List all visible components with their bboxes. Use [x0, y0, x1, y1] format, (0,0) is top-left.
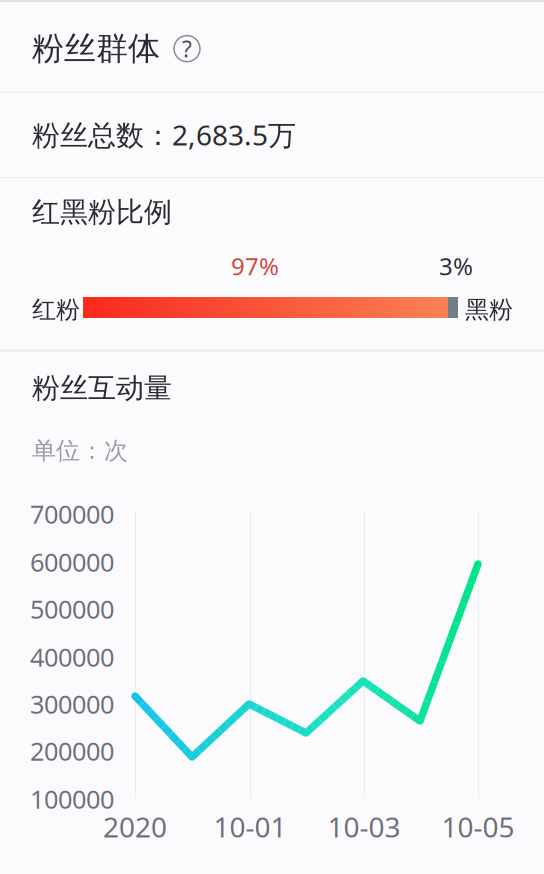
staticText: 300000 [30, 687, 114, 721]
staticText: 红粉 [32, 295, 80, 324]
staticText: 单位：次 [32, 436, 128, 465]
staticText: 700000 [30, 497, 114, 531]
staticText: 600000 [30, 545, 114, 579]
staticText: 红黑粉比例 [32, 195, 172, 229]
staticText: 200000 [30, 734, 114, 768]
staticText: 400000 [30, 640, 114, 674]
staticText: 2020 [103, 808, 167, 845]
staticText: 粉丝总数：2,683.5万 [32, 116, 296, 153]
staticText: 3% [439, 250, 473, 282]
staticText: ? [182, 34, 192, 64]
staticText: 10-03 [327, 808, 400, 845]
staticText: 粉丝互动量 [32, 371, 172, 405]
staticText: 黑粉 [465, 295, 513, 324]
staticText: 10-05 [441, 808, 514, 845]
staticText: 97% [231, 250, 279, 282]
staticText: 粉丝群体 [32, 29, 160, 68]
button[interactable]: 粉丝群体 [32, 29, 200, 68]
staticText: 10-01 [213, 808, 286, 845]
staticText: 500000 [30, 592, 114, 626]
staticText: 100000 [30, 782, 114, 816]
